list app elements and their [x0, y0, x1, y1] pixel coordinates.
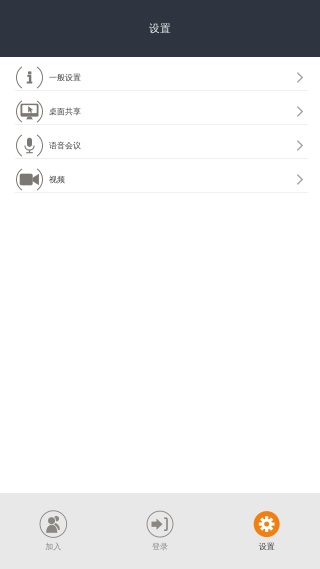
staticText: 桌面共享 [49, 107, 81, 116]
button[interactable]: 一般设置 [0, 57, 320, 91]
button[interactable]: 加入 [0, 493, 107, 569]
button[interactable]: 视频 [0, 159, 320, 193]
button[interactable]: 语音会议 [0, 125, 320, 159]
staticText: 设置 [149, 22, 171, 35]
button[interactable]: 桌面共享 [0, 91, 320, 125]
staticText: 加入 [45, 542, 61, 551]
staticText: 语音会议 [49, 141, 81, 150]
staticText: 视频 [49, 175, 65, 184]
staticText: 登录 [152, 542, 168, 551]
button[interactable]: 登录 [107, 493, 213, 569]
staticText: 设置 [259, 542, 275, 551]
staticText: 一般设置 [49, 73, 81, 82]
button[interactable]: 设置 [213, 493, 320, 569]
